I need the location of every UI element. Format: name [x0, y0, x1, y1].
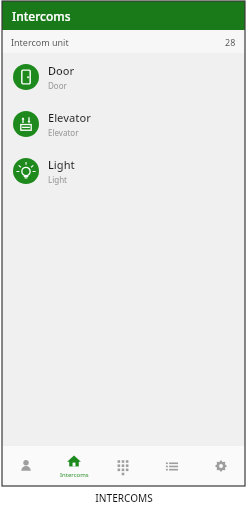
staticText: Intercom unit — [11, 36, 69, 48]
staticText: Light — [48, 157, 75, 172]
button[interactable]: Contacts — [2, 446, 50, 486]
staticText: Elevator — [48, 127, 79, 138]
button[interactable]: Elevator — [2, 105, 245, 142]
staticText: 28 — [225, 36, 236, 48]
staticText: Elevator — [48, 110, 91, 125]
button[interactable]: Settings — [196, 446, 245, 486]
button[interactable]: List — [147, 446, 196, 486]
button[interactable]: Dialpad — [98, 446, 147, 486]
staticText: Door — [48, 80, 67, 91]
staticText: Intercoms — [60, 471, 89, 479]
staticText: Intercoms — [12, 8, 71, 24]
staticText: Door — [48, 63, 75, 78]
button[interactable]: Door — [2, 58, 245, 95]
button[interactable]: Light — [2, 152, 245, 189]
staticText: INTERCOMS — [95, 491, 153, 505]
staticText: Light — [48, 174, 68, 185]
button[interactable]: Intercoms — [50, 446, 98, 486]
